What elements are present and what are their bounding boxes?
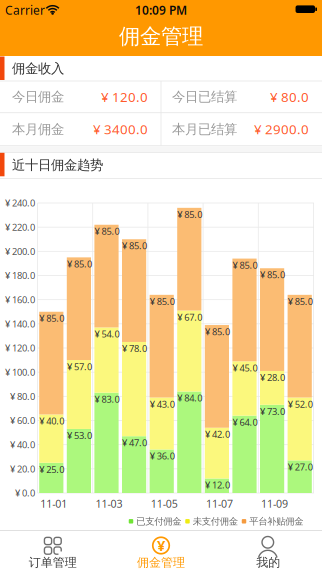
- staticText: ¥ 100.0: [5, 366, 35, 378]
- staticText: ¥ 73.0: [260, 405, 285, 417]
- staticText: ¥ 57.0: [67, 360, 92, 373]
- staticText: ¥ 83.0: [94, 393, 119, 405]
- staticText: ¥ 85.0: [39, 312, 64, 324]
- staticText: 已支付佣金: [136, 516, 181, 527]
- button[interactable]: 我的: [215, 531, 322, 572]
- staticText: ¥ 3400.0: [93, 120, 148, 138]
- staticText: ¥ 28.0: [260, 371, 285, 384]
- staticText: ¥ 43.0: [150, 398, 175, 410]
- staticText: ¥ 80.0: [10, 390, 35, 402]
- button[interactable]: 订单管理: [0, 531, 107, 572]
- staticText: ¥ 47.0: [122, 436, 147, 449]
- staticText: ¥ 20.0: [10, 463, 35, 475]
- staticText: ¥ 12.0: [205, 479, 230, 491]
- staticText: 今日已结算: [172, 89, 237, 105]
- staticText: Carrier: [5, 2, 45, 18]
- staticText: 11-01: [40, 496, 67, 511]
- staticText: 11-07: [206, 496, 233, 511]
- staticText: 订单管理: [29, 555, 77, 570]
- staticText: ¥ 140.0: [5, 318, 35, 330]
- staticText: ¥ 84.0: [177, 392, 202, 404]
- staticText: ¥ 85.0: [67, 258, 92, 270]
- staticText: 10:09 PM: [135, 2, 187, 18]
- staticText: ¥ 36.0: [150, 450, 175, 462]
- staticText: ¥: [157, 536, 165, 555]
- staticText: 未支付佣金: [193, 516, 238, 527]
- staticText: 佣金管理: [137, 555, 185, 570]
- staticText: ¥ 42.0: [205, 428, 230, 440]
- staticText: ¥ 67.0: [177, 311, 202, 323]
- staticText: 我的: [256, 555, 280, 570]
- staticText: ¥ 85.0: [122, 240, 147, 252]
- staticText: 佣金管理: [119, 23, 203, 50]
- staticText: 本月佣金: [12, 121, 64, 137]
- staticText: 今日佣金: [12, 89, 64, 105]
- staticText: ¥ 2900.0: [254, 120, 309, 138]
- staticText: ¥ 25.0: [39, 463, 64, 475]
- staticText: 11-05: [151, 496, 178, 511]
- staticText: ¥ 40.0: [39, 415, 64, 427]
- staticText: ¥ 160.0: [5, 293, 35, 306]
- staticText: ¥ 85.0: [205, 325, 230, 338]
- staticText: ¥ 60.0: [10, 414, 35, 427]
- staticText: ¥ 85.0: [232, 259, 257, 271]
- staticText: 11-09: [261, 496, 288, 511]
- staticText: ¥ 200.0: [5, 245, 35, 257]
- staticText: ¥ 54.0: [94, 328, 119, 340]
- button[interactable]: ¥: [107, 531, 215, 572]
- staticText: ¥ 0.0: [15, 487, 35, 499]
- staticText: ¥ 120.0: [101, 88, 148, 106]
- staticText: ¥ 52.0: [288, 398, 313, 410]
- staticText: ¥ 53.0: [67, 429, 92, 442]
- staticText: ¥ 40.0: [10, 438, 35, 451]
- staticText: 11-03: [95, 496, 122, 511]
- staticText: ¥ 45.0: [232, 362, 257, 374]
- staticText: ¥ 85.0: [94, 225, 119, 237]
- staticText: ¥ 85.0: [150, 295, 175, 307]
- staticText: 近十日佣金趋势: [12, 157, 103, 173]
- staticText: ¥ 64.0: [232, 416, 257, 428]
- staticText: ¥ 220.0: [5, 221, 35, 233]
- staticText: ¥ 180.0: [5, 269, 35, 282]
- staticText: ¥ 80.0: [270, 88, 309, 106]
- staticText: ¥ 120.0: [5, 342, 35, 354]
- staticText: ¥ 240.0: [5, 197, 35, 209]
- staticText: ¥ 27.0: [288, 461, 313, 473]
- staticText: 本月已结算: [172, 121, 237, 137]
- staticText: 佣金收入: [12, 60, 64, 77]
- staticText: ¥ 78.0: [122, 342, 147, 355]
- staticText: ¥ 85.0: [260, 269, 285, 281]
- staticText: 平台补贴佣金: [249, 516, 303, 527]
- staticText: ¥ 85.0: [177, 208, 202, 220]
- staticText: ¥ 85.0: [288, 295, 313, 307]
